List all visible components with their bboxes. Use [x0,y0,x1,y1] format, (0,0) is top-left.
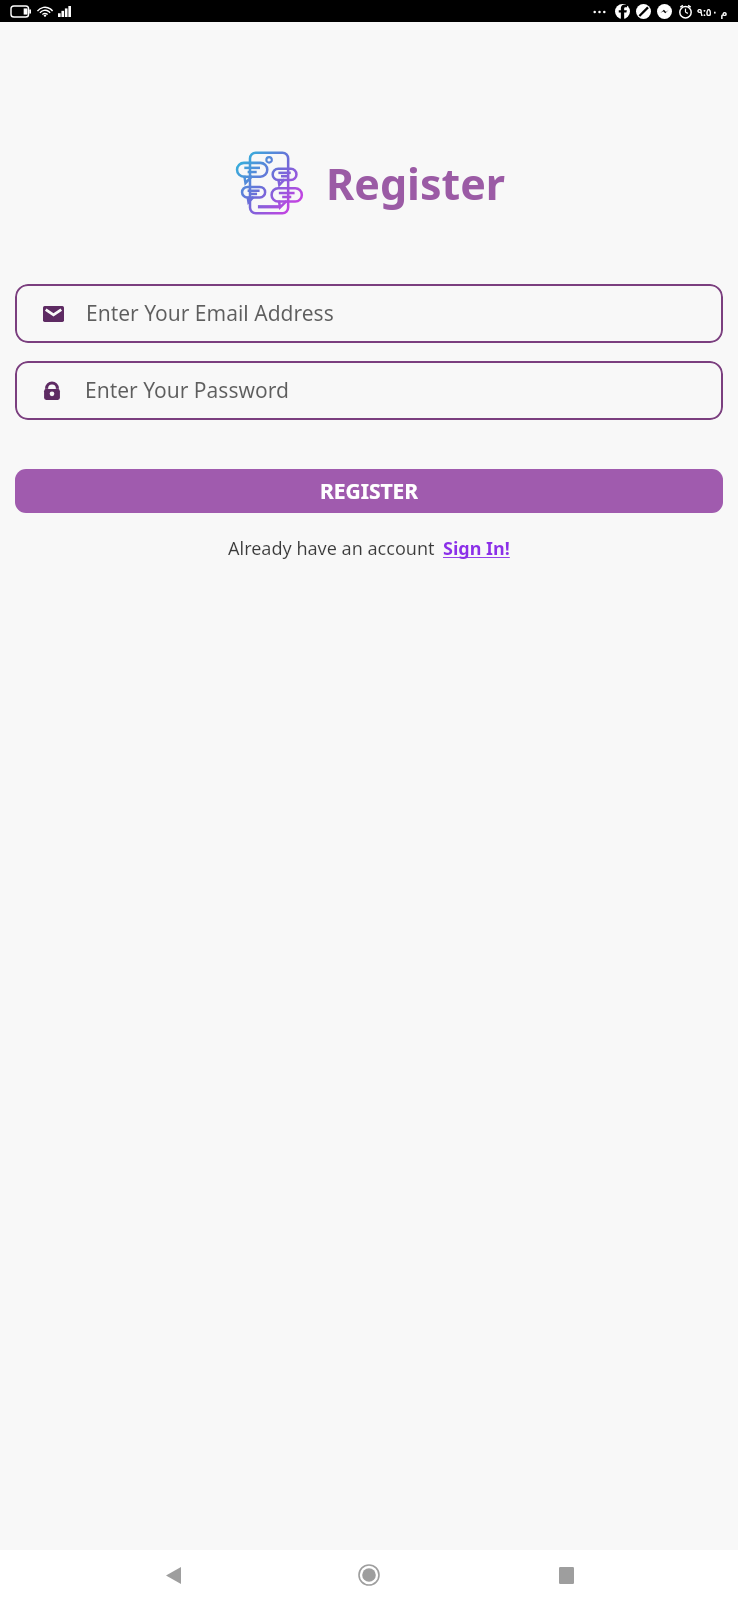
staticText: Register [326,154,506,213]
button[interactable]: Back [149,1551,197,1599]
button[interactable]: REGISTER [15,469,723,513]
staticText: م ٩:٥٠ [697,4,728,19]
staticText: Sign In! [443,536,510,561]
button[interactable]: Sign In! [443,536,510,561]
button[interactable]: Recents [542,1551,590,1599]
staticText: Enter Your Email Address [86,299,334,328]
button[interactable]: Enter Your Email Address [15,284,723,343]
staticText: Already have an account [228,536,435,561]
staticText: Enter Your Password [85,376,289,405]
staticText: REGISTER [320,477,419,506]
button[interactable]: Enter Your Password [15,361,723,420]
button[interactable]: Home [345,1551,393,1599]
